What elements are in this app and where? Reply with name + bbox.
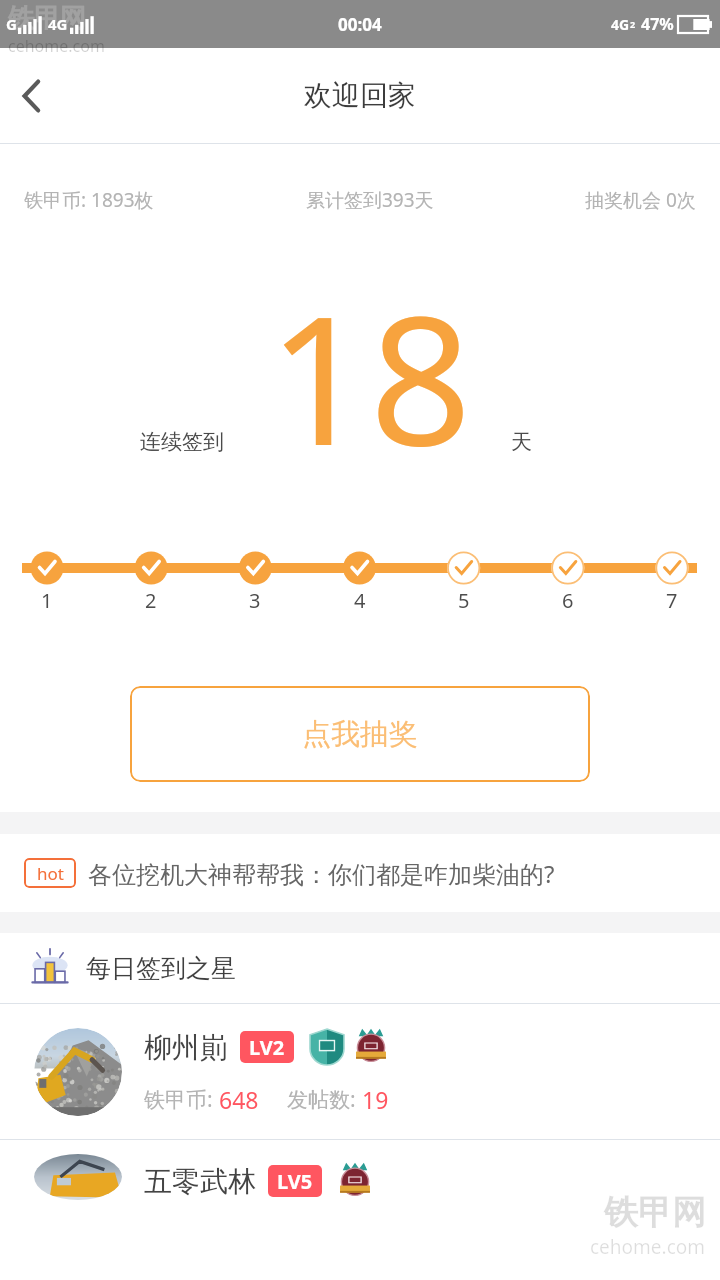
button[interactable]: hot — [0, 834, 720, 912]
staticText: 1 — [41, 587, 53, 614]
staticText: hot — [37, 862, 64, 885]
staticText: 4G — [48, 14, 68, 34]
staticText: G — [6, 14, 17, 34]
button[interactable]: Check-in progress — [0, 529, 720, 614]
staticText: 连续签到 — [140, 429, 224, 455]
staticText: 每日签到之星 — [86, 953, 236, 984]
staticText: 铁甲网 — [604, 1191, 706, 1234]
staticText: 柳州崱 — [144, 1030, 228, 1065]
staticText: 19 — [362, 1084, 389, 1115]
staticText: 发帖数: — [287, 1085, 362, 1114]
staticText: 6 — [562, 587, 574, 614]
staticText: 累计签到393天 — [306, 187, 434, 213]
staticText: 各位挖机大神帮帮我：你们都是咋加柴油的? — [88, 857, 555, 890]
staticText: 4G — [611, 15, 630, 34]
staticText: 铁甲币: 1893枚 — [24, 187, 154, 213]
staticText: 3 — [249, 587, 261, 614]
staticText: 点我抽奖 — [302, 716, 418, 753]
button[interactable]: 柳州崱 — [0, 1004, 720, 1139]
staticText: 抽奖机会 0次 — [585, 187, 696, 213]
staticText: 47% — [641, 13, 674, 35]
staticText: 2 — [145, 587, 157, 614]
staticText: 5 — [458, 587, 470, 614]
staticText: 18 — [268, 255, 472, 497]
staticText: 7 — [666, 587, 678, 614]
staticText: 4 — [354, 587, 366, 614]
staticText: 铁甲网 — [8, 2, 86, 35]
staticText: cehome.com — [590, 1234, 706, 1260]
button[interactable]: 点我抽奖 — [130, 686, 590, 782]
staticText: 648 — [219, 1084, 259, 1115]
staticText: 天 — [511, 429, 532, 455]
button[interactable]: Back — [0, 64, 64, 128]
staticText: 2 — [630, 18, 636, 30]
staticText: LV5 — [277, 1168, 313, 1195]
staticText: 铁甲币: — [144, 1085, 219, 1114]
staticText: 欢迎回家 — [304, 78, 416, 113]
staticText: 五零武林 — [144, 1164, 256, 1199]
staticText: LV2 — [249, 1034, 285, 1061]
staticText: 00:04 — [338, 13, 382, 36]
button[interactable]: 五零武林 — [0, 1140, 720, 1200]
staticText: cehome.com — [8, 35, 105, 57]
